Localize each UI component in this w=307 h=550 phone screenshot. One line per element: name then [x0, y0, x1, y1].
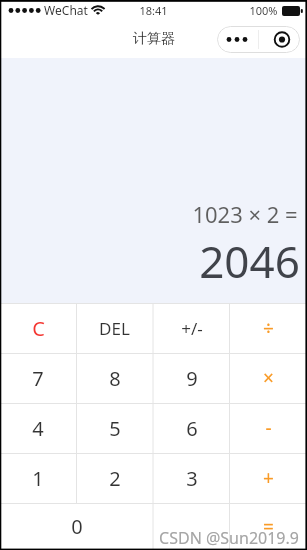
button[interactable]: DEL — [76, 303, 153, 353]
staticText: 3 — [186, 465, 198, 492]
staticText: 100% — [249, 3, 278, 18]
staticText: C — [32, 315, 45, 342]
staticText: 9 — [186, 365, 198, 392]
staticText: WeChat — [44, 2, 88, 18]
staticText: 1 — [32, 465, 44, 492]
staticText: 2 — [109, 465, 121, 492]
button[interactable]: ÷ — [230, 303, 307, 353]
button[interactable]: 6 — [153, 403, 230, 453]
button[interactable]: - — [230, 403, 307, 453]
button[interactable]: C — [0, 303, 76, 353]
button[interactable]: × — [230, 353, 307, 403]
staticText: - — [265, 415, 272, 441]
staticText: DEL — [99, 317, 130, 340]
button[interactable]: = — [230, 503, 307, 550]
button[interactable]: 0 — [0, 503, 153, 550]
staticText: 6 — [186, 415, 198, 442]
staticText: 0 — [71, 513, 83, 540]
staticText: 18:41 — [139, 3, 168, 18]
staticText: 4 — [32, 415, 44, 442]
button[interactable]: 1 — [0, 453, 76, 503]
button[interactable]: 4 — [0, 403, 76, 453]
staticText: 8 — [109, 365, 121, 392]
button[interactable]: 2 — [76, 453, 153, 503]
staticText: ÷ — [263, 315, 274, 341]
staticText: 7 — [32, 365, 44, 392]
button[interactable]: 7 — [0, 353, 76, 403]
button[interactable]: 3 — [153, 453, 230, 503]
button[interactable]: 9 — [153, 353, 230, 403]
staticText: 计算器 — [133, 30, 175, 48]
button[interactable]: 5 — [76, 403, 153, 453]
button[interactable]: +/- — [153, 303, 230, 353]
staticText: 2046 — [199, 231, 300, 291]
button[interactable] — [217, 26, 300, 53]
staticText: = — [263, 514, 274, 540]
staticText: × — [263, 365, 274, 391]
button[interactable] — [153, 503, 230, 550]
staticText: 5 — [109, 415, 121, 442]
staticText: 1023 × 2 = — [192, 199, 298, 229]
button[interactable]: + — [230, 453, 307, 503]
staticText: +/- — [181, 317, 203, 340]
staticText: CSDN @Sun2019.9 — [159, 527, 299, 549]
staticText: + — [263, 465, 274, 491]
button[interactable]: 8 — [76, 353, 153, 403]
